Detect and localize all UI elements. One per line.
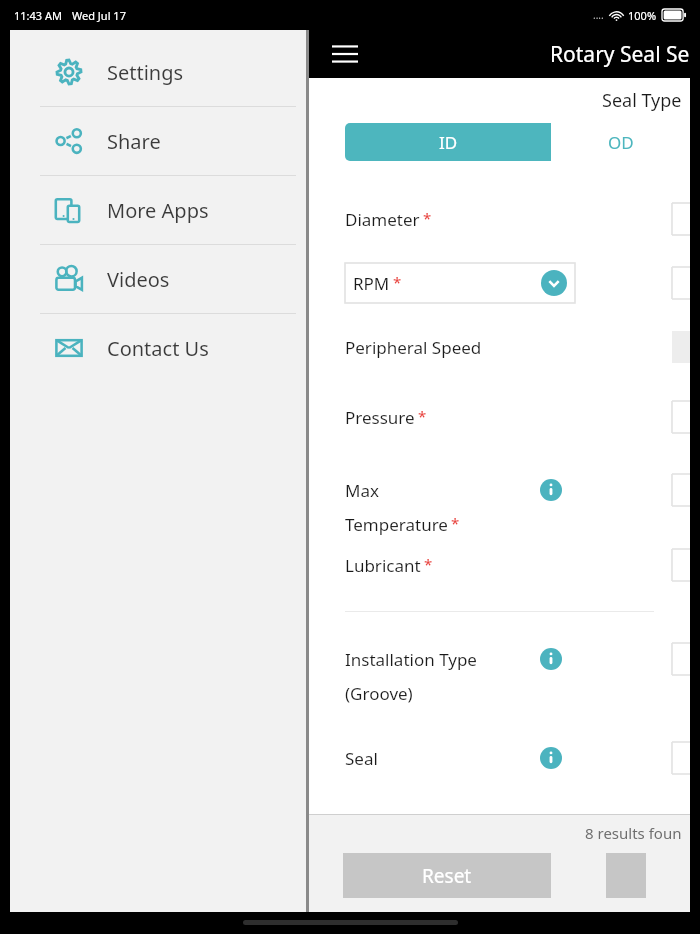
button[interactable]: More information	[540, 648, 562, 670]
staticText: Videos	[107, 266, 170, 293]
button[interactable]: Contact Us	[10, 314, 306, 382]
staticText: ID	[439, 131, 458, 154]
button[interactable]: Open navigation menu	[325, 34, 365, 74]
staticText: 11:43 AM	[14, 8, 62, 23]
staticText: (Groove)	[345, 682, 413, 705]
button[interactable]: ID	[345, 123, 551, 161]
staticText: More Apps	[107, 197, 209, 224]
button[interactable]: More Apps	[10, 176, 306, 244]
button[interactable]: Reset	[343, 853, 551, 898]
button[interactable]	[672, 401, 690, 433]
staticText: Reset	[422, 863, 472, 889]
staticText: Max	[345, 479, 379, 502]
button[interactable]: Share	[10, 107, 306, 175]
staticText: Settings	[107, 59, 184, 86]
staticText: Rotary Seal Se	[550, 40, 690, 69]
button[interactable]: Settings	[10, 38, 306, 106]
staticText: Temperature	[345, 513, 448, 536]
staticText: *	[451, 513, 460, 533]
button[interactable]	[672, 267, 690, 299]
button[interactable]: Videos	[10, 245, 306, 313]
staticText: 100%	[628, 8, 657, 23]
staticText: Seal Type	[602, 88, 682, 113]
staticText: Lubricant	[345, 554, 421, 577]
staticText: ....	[593, 8, 604, 22]
staticText: Share	[107, 128, 161, 155]
staticText: *	[393, 272, 402, 292]
staticText: Diameter	[345, 208, 420, 231]
button[interactable]: More information	[540, 479, 562, 501]
staticText: *	[423, 208, 432, 228]
button[interactable]: OD	[551, 123, 690, 161]
staticText: 8 results foun	[585, 823, 682, 843]
staticText: *	[418, 406, 427, 426]
staticText: RPM	[353, 272, 390, 295]
staticText: Peripheral Speed	[345, 336, 482, 359]
button[interactable]	[672, 643, 690, 675]
staticText: Installation Type	[345, 648, 477, 671]
button[interactable]: RPM	[345, 263, 575, 303]
button[interactable]	[672, 474, 690, 506]
button[interactable]	[672, 742, 690, 774]
staticText: Contact Us	[107, 335, 209, 362]
staticText: OD	[608, 131, 634, 154]
staticText: Seal	[345, 747, 378, 770]
button[interactable]	[672, 203, 690, 235]
staticText: Wed Jul 17	[72, 8, 126, 23]
button[interactable]: More information	[540, 747, 562, 769]
staticText: Pressure	[345, 406, 415, 429]
button[interactable]	[672, 549, 690, 581]
staticText: *	[424, 554, 433, 574]
